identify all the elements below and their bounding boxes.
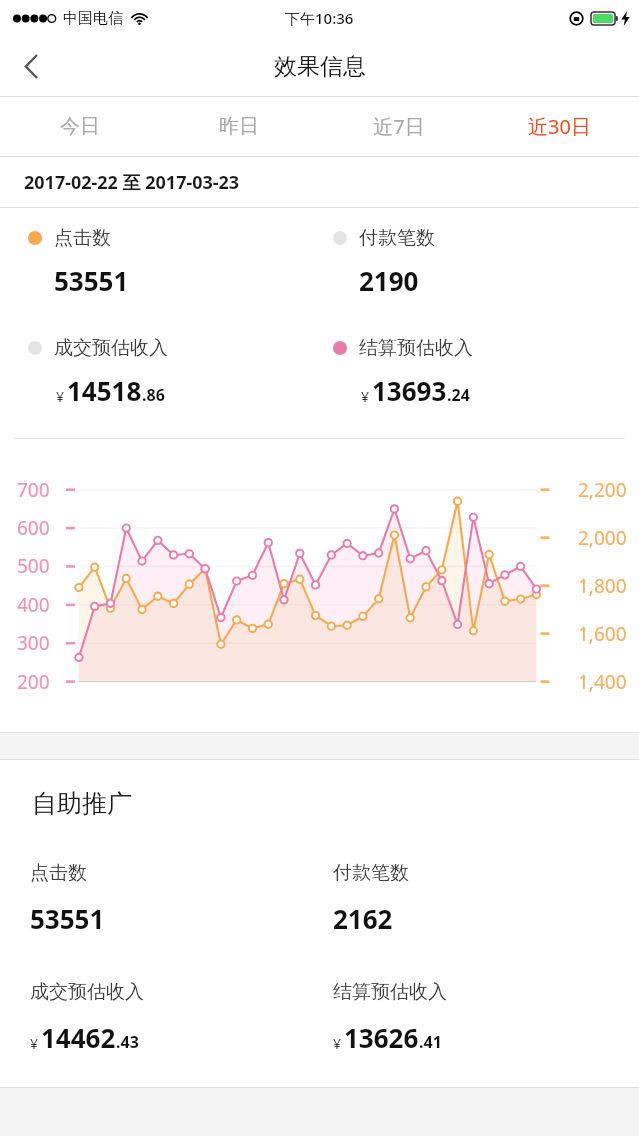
staticText: ¥ bbox=[30, 1034, 39, 1053]
button[interactable]: 昨日 bbox=[159, 97, 319, 156]
staticText: 效果信息 bbox=[274, 52, 366, 81]
staticText: 昨日 bbox=[219, 114, 259, 139]
staticText: 结算预估收入 bbox=[333, 980, 447, 1004]
button[interactable]: 成交预估收入 bbox=[0, 980, 319, 1055]
staticText: 2,000 bbox=[578, 525, 627, 551]
staticText: 1,400 bbox=[578, 669, 627, 695]
staticText: 下午10:36 bbox=[285, 8, 354, 28]
staticText: 1,800 bbox=[578, 573, 627, 599]
button[interactable]: 成交预估收入 bbox=[0, 336, 319, 408]
staticText: 近7日 bbox=[373, 113, 425, 140]
button[interactable]: 近7日 bbox=[319, 97, 479, 156]
staticText: 2162 bbox=[333, 901, 393, 936]
staticText: 付款笔数 bbox=[359, 226, 435, 250]
staticText: 2,200 bbox=[578, 477, 627, 503]
button[interactable]: 近30日 bbox=[479, 97, 639, 156]
staticText: 结算预估收入 bbox=[359, 336, 473, 360]
staticText: 500 bbox=[17, 553, 50, 579]
staticText: 600 bbox=[17, 515, 50, 541]
button[interactable]: 点击数 bbox=[0, 226, 319, 298]
button[interactable]: Back bbox=[0, 36, 62, 96]
button[interactable]: 点击数 bbox=[0, 861, 319, 936]
staticText: 13626 bbox=[344, 1020, 419, 1055]
staticText: 14462 bbox=[41, 1020, 116, 1055]
button[interactable]: 结算预估收入 bbox=[319, 336, 639, 408]
staticText: 今日 bbox=[60, 114, 100, 139]
staticText: .41 bbox=[419, 1031, 442, 1053]
staticText: 自助推广 bbox=[32, 788, 132, 819]
staticText: 近30日 bbox=[528, 113, 591, 140]
staticText: .86 bbox=[142, 384, 165, 406]
button[interactable]: 付款笔数 bbox=[319, 226, 639, 298]
staticText: ¥ bbox=[56, 387, 65, 406]
staticText: 成交预估收入 bbox=[30, 980, 144, 1004]
staticText: 2017-02-22 至 2017-03-23 bbox=[24, 170, 240, 195]
staticText: 53551 bbox=[30, 901, 105, 936]
staticText: .24 bbox=[447, 384, 470, 406]
staticText: 13693 bbox=[372, 373, 447, 408]
staticText: 2190 bbox=[359, 263, 419, 298]
staticText: 400 bbox=[17, 592, 50, 618]
button[interactable]: 结算预估收入 bbox=[319, 980, 639, 1055]
staticText: 成交预估收入 bbox=[54, 336, 168, 360]
staticText: 付款笔数 bbox=[333, 861, 409, 885]
staticText: .43 bbox=[116, 1031, 139, 1053]
staticText: 300 bbox=[17, 630, 50, 656]
button[interactable]: 付款笔数 bbox=[319, 861, 639, 936]
staticText: 点击数 bbox=[54, 226, 111, 250]
staticText: ¥ bbox=[361, 387, 370, 406]
staticText: 点击数 bbox=[30, 861, 87, 885]
staticText: 中国电信 bbox=[63, 9, 123, 28]
staticText: 700 bbox=[17, 477, 50, 503]
staticText: 1,600 bbox=[578, 621, 627, 647]
staticText: 200 bbox=[17, 669, 50, 695]
staticText: 53551 bbox=[54, 263, 129, 298]
staticText: 14518 bbox=[67, 373, 142, 408]
staticText: ¥ bbox=[333, 1034, 342, 1053]
button[interactable]: 今日 bbox=[0, 97, 159, 156]
